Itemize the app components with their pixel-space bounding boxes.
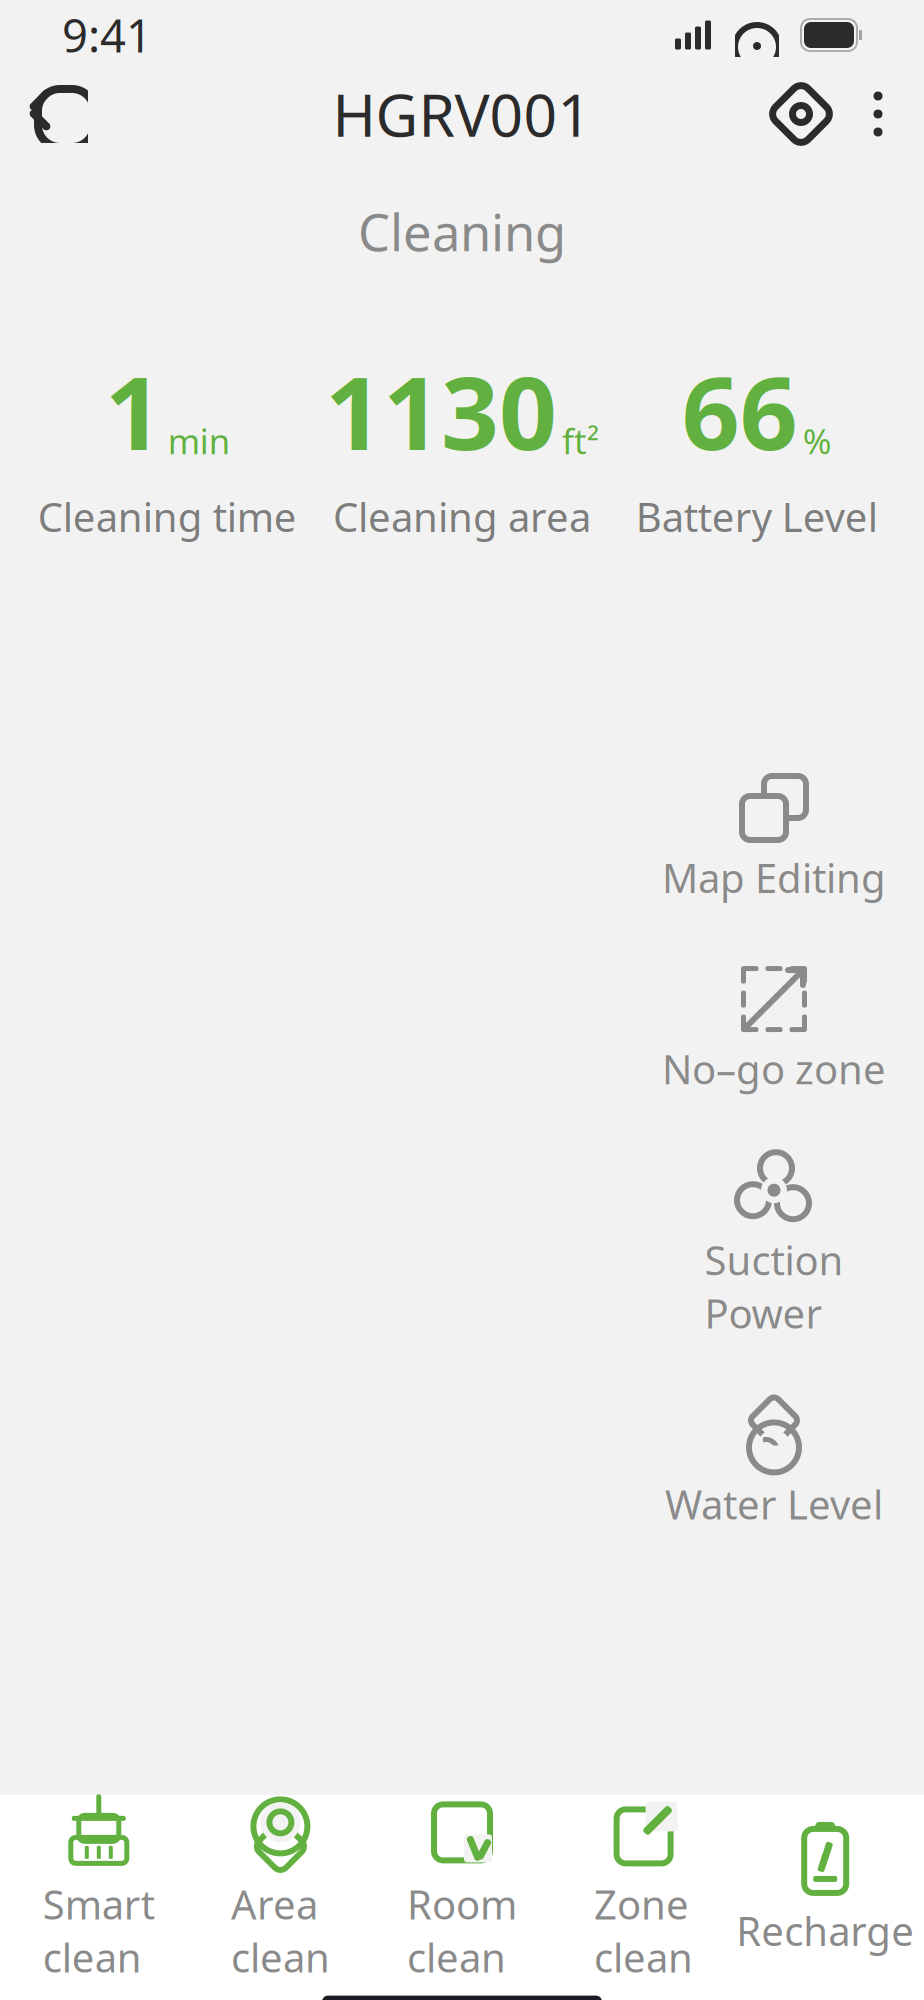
staticText: 9:41 xyxy=(62,5,152,65)
staticText: min xyxy=(168,418,230,464)
button[interactable]: Recharge xyxy=(734,1816,916,1961)
staticText: ft² xyxy=(562,418,599,464)
button[interactable]: Back xyxy=(24,78,96,150)
button[interactable]: Water Level xyxy=(644,1389,904,1536)
staticText: Cleaning time xyxy=(38,490,297,543)
staticText: Recharge xyxy=(736,1904,914,1957)
staticText: Room clean xyxy=(407,1877,517,1984)
button[interactable]: Zone clean xyxy=(553,1789,734,1988)
staticText: Zone clean xyxy=(594,1877,693,1984)
staticText: 66 xyxy=(682,343,798,478)
staticText: Suction Power xyxy=(704,1233,843,1339)
staticText: HGRV001 xyxy=(332,75,591,153)
button[interactable]: No–go zone xyxy=(644,954,904,1101)
staticText: % xyxy=(803,418,832,464)
button[interactable]: Room clean xyxy=(371,1789,553,1988)
button[interactable]: Suction Power xyxy=(644,1145,904,1345)
staticText: Area clean xyxy=(231,1877,330,1984)
button[interactable]: Area clean xyxy=(190,1789,371,1988)
staticText: Map Editing xyxy=(662,851,886,904)
button[interactable]: Map Editing xyxy=(644,763,904,910)
staticText: Water Level xyxy=(665,1477,883,1530)
button[interactable]: More options xyxy=(856,81,900,147)
button[interactable]: Device sensor xyxy=(768,81,834,147)
staticText: Smart clean xyxy=(43,1877,155,1984)
staticText: 1 xyxy=(105,343,163,478)
staticText: Cleaning xyxy=(358,198,566,265)
staticText: 1130 xyxy=(325,343,557,478)
staticText: No–go zone xyxy=(662,1042,886,1095)
staticText: Cleaning area xyxy=(333,490,591,543)
staticText: Battery Level xyxy=(636,490,878,543)
button[interactable]: Smart clean xyxy=(8,1789,190,1988)
